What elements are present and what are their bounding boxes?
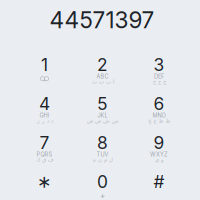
button[interactable]: 1 [16, 52, 72, 91]
button[interactable]: 0 [74, 169, 130, 200]
button[interactable]: # [131, 169, 187, 200]
staticText: 4 [39, 93, 50, 114]
staticText: # [153, 171, 164, 192]
staticText: MNO [152, 112, 165, 119]
staticText: س ش ص ض [86, 118, 118, 124]
button[interactable]: 5 [74, 91, 130, 130]
staticText: 7 [39, 132, 49, 153]
staticText: د ذ ر ز [36, 118, 52, 124]
staticText: + [100, 191, 105, 200]
staticText: WXYZ [150, 151, 168, 158]
staticText: ف ق ك [35, 157, 53, 163]
button[interactable]: 2 [74, 52, 130, 91]
staticText: GHI [39, 112, 49, 119]
staticText: ط ظ ع غ [148, 118, 170, 124]
staticText: 1 [41, 54, 48, 75]
staticText: ABC [96, 73, 108, 80]
staticText: 8 [97, 132, 108, 153]
staticText: JKL [97, 112, 107, 119]
staticText: و ي [154, 157, 163, 163]
button[interactable]: ∗ [16, 169, 72, 200]
button[interactable]: 6 [131, 91, 187, 130]
staticText: 0 [97, 171, 108, 192]
button[interactable]: 7 [16, 130, 72, 169]
staticText: TUV [96, 151, 108, 158]
staticText: 3 [153, 54, 164, 75]
staticText: 2 [97, 54, 108, 75]
staticText: ا ب ت ث [91, 79, 113, 85]
button[interactable]: 8 [74, 130, 130, 169]
button[interactable]: 3 [131, 52, 187, 91]
staticText: DEF [154, 73, 164, 80]
button[interactable]: 4 [16, 91, 72, 130]
staticText: 6 [153, 93, 164, 114]
staticText: ل م ن ه [92, 157, 112, 163]
staticText: 9 [153, 132, 164, 153]
staticText: PQRS [36, 151, 52, 158]
staticText: ∗ [37, 172, 52, 192]
staticText: 44571397 [49, 6, 154, 34]
staticText: ج ح خ [152, 79, 165, 85]
staticText: 5 [97, 93, 108, 114]
button[interactable]: 9 [131, 130, 187, 169]
